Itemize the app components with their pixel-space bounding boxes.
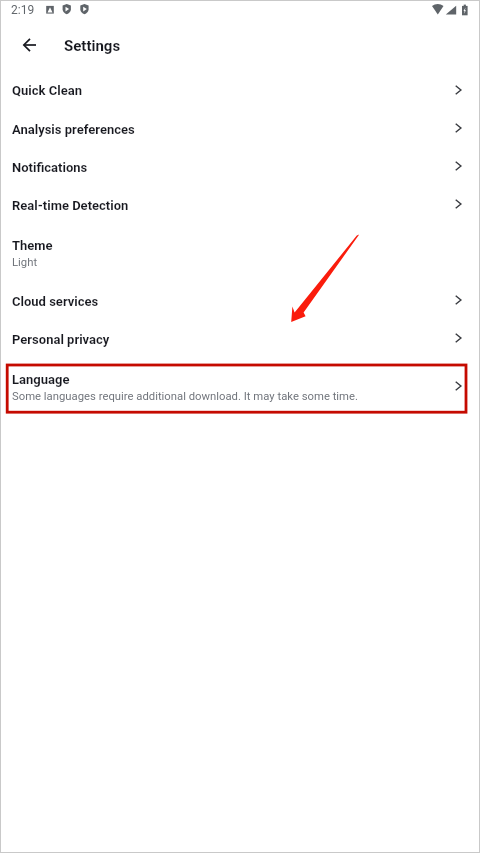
staticText: Settings (64, 37, 121, 55)
button[interactable]: Analysis preferences (1, 110, 479, 148)
staticText: Real-time Detection (12, 198, 129, 213)
button[interactable]: Real-time Detection (1, 186, 479, 224)
button[interactable]: Notifications (1, 148, 479, 186)
staticText: Some languages require additional downlo… (12, 390, 358, 403)
staticText: Analysis preferences (12, 122, 135, 137)
staticText: Light (12, 256, 38, 269)
staticText: 2:19 (11, 3, 35, 17)
button[interactable]: Personal privacy (1, 320, 479, 358)
staticText: Language (12, 372, 70, 387)
staticText: Quick Clean (12, 83, 82, 98)
button[interactable]: Quick Clean (1, 72, 479, 110)
staticText: Personal privacy (12, 332, 110, 347)
button[interactable]: Theme (1, 224, 479, 282)
staticText: Notifications (12, 160, 88, 175)
staticText: Theme (12, 238, 53, 253)
button[interactable]: Back (11, 27, 47, 63)
staticText: Cloud services (12, 294, 99, 309)
button[interactable]: Language (1, 358, 479, 416)
button[interactable]: Cloud services (1, 282, 479, 320)
